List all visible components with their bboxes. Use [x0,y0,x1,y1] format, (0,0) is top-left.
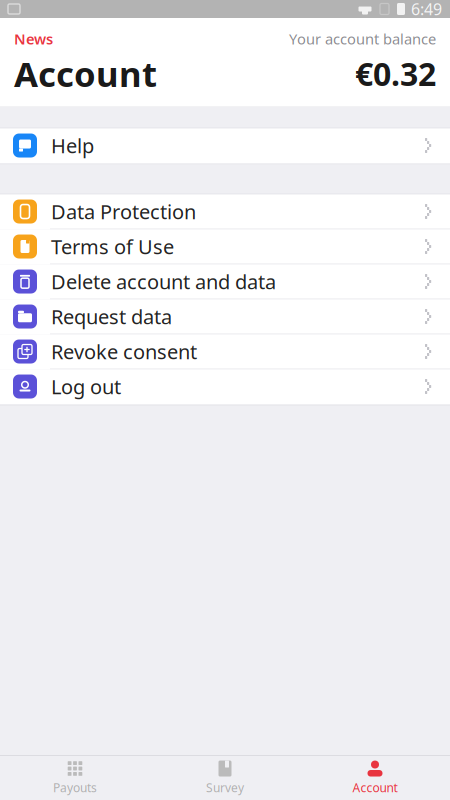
button[interactable]: Account [300,756,450,800]
staticText: Log out [51,373,121,400]
staticText: Request data [51,303,172,330]
button[interactable]: Help [0,128,450,163]
button[interactable]: Data Protection [0,194,450,229]
staticText: Account [352,779,397,795]
button[interactable]: Request data [0,299,450,334]
staticText: News [14,29,53,48]
button[interactable]: News [14,29,53,48]
staticText: €0.32 [355,52,436,95]
staticText: Your account balance [289,29,436,48]
button[interactable]: Revoke consent [0,334,450,369]
staticText: Account [14,50,157,96]
button[interactable]: Payouts [0,756,150,800]
staticText: Survey [206,779,244,795]
staticText: Delete account and data [51,268,276,295]
button[interactable]: Terms of Use [0,229,450,264]
button[interactable]: Survey [150,756,300,800]
button[interactable]: Delete account and data [0,264,450,299]
staticText: 6:49 [411,0,442,20]
staticText: Payouts [53,779,97,795]
staticText: Terms of Use [51,233,174,260]
staticText: Data Protection [51,198,196,225]
staticText: Help [51,132,94,159]
staticText: Revoke consent [51,338,197,365]
button[interactable]: Log out [0,369,450,404]
